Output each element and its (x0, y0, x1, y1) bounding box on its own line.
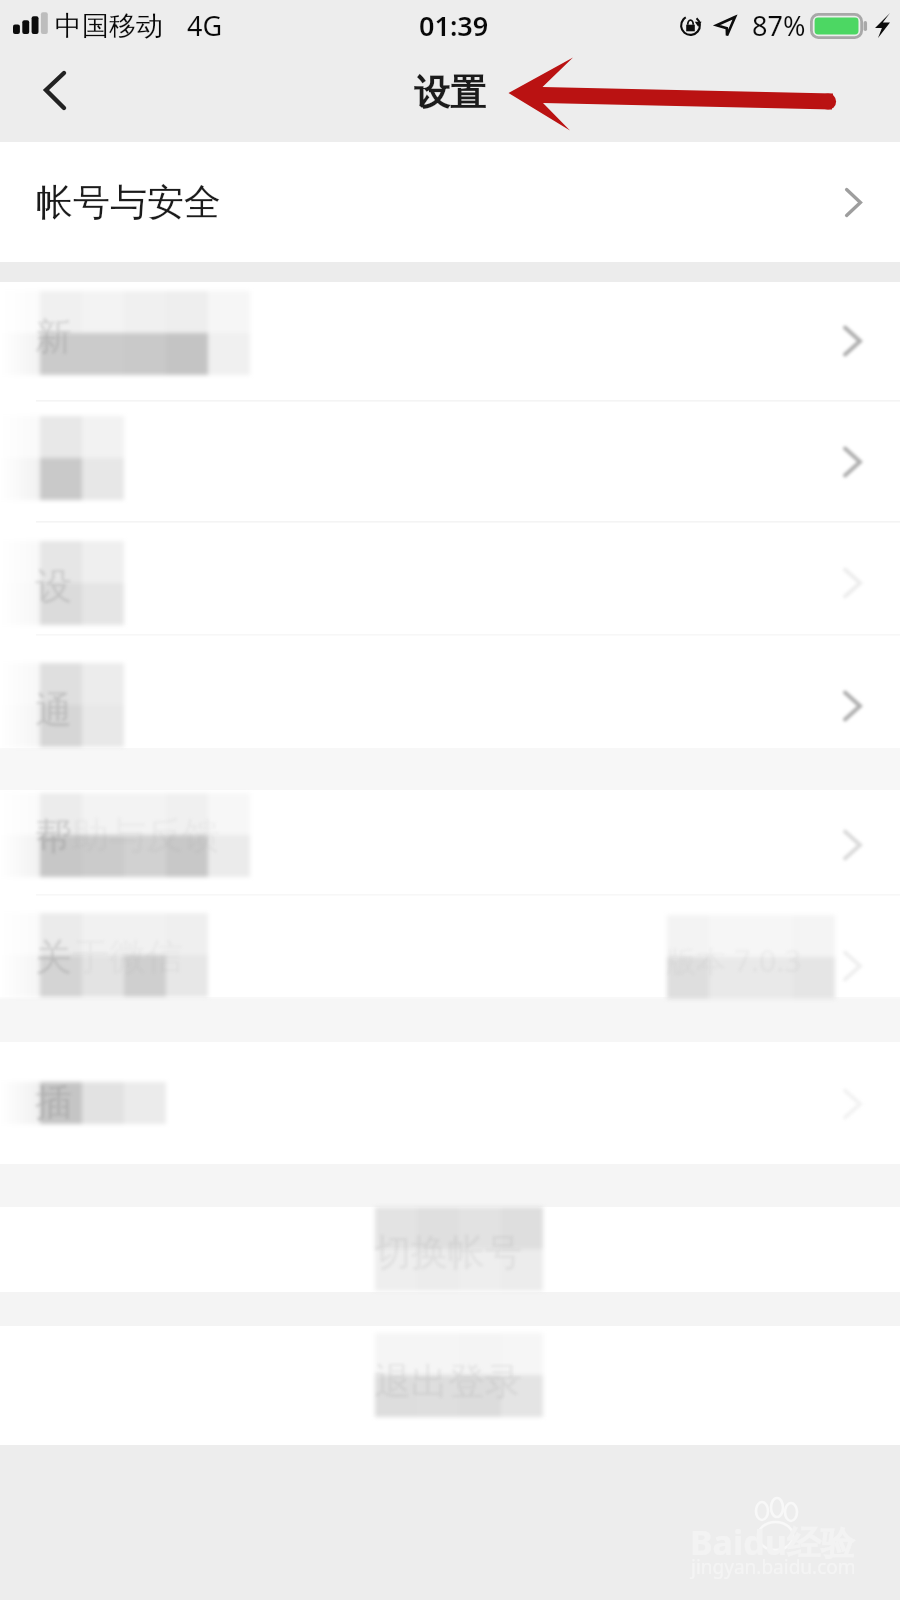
staticText: 插 (35, 1079, 72, 1126)
staticText: 关 (35, 934, 72, 981)
staticText: 退出登录 (374, 1358, 522, 1405)
button[interactable]: 切换帐号 (0, 1207, 900, 1292)
button[interactable]: 帐号与安全 (0, 142, 900, 262)
staticText: 帐号与安全 (36, 179, 221, 226)
button[interactable]: 新消息通知 (0, 282, 900, 400)
staticText: 助与反馈 (72, 812, 220, 859)
staticText: 通 (35, 687, 72, 734)
staticText: 4G (187, 7, 223, 44)
staticText: 设 (35, 563, 72, 610)
staticText: 设置 (414, 70, 486, 115)
button[interactable]: 插件 (0, 1042, 900, 1164)
button[interactable]: Back (28, 58, 84, 120)
staticText: 87% (752, 7, 806, 44)
staticText: 版本 7.0.3 (666, 940, 802, 981)
button[interactable]: 通用 (0, 522, 900, 634)
staticText: 01:39 (419, 7, 489, 44)
button[interactable]: 关于微信 (0, 895, 900, 997)
button[interactable]: 设备管理 (0, 635, 900, 748)
staticText: 帮 (35, 813, 72, 860)
button[interactable]: 帮助与反馈 (0, 790, 900, 894)
button[interactable]: 隐私 (0, 401, 900, 521)
staticText: 切换帐号 (374, 1229, 522, 1276)
staticText: 新 (35, 313, 72, 360)
staticText: 于微信 (72, 933, 183, 980)
staticText: 中国移动 (55, 9, 163, 43)
button[interactable]: 退出登录 (0, 1326, 900, 1445)
